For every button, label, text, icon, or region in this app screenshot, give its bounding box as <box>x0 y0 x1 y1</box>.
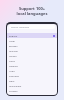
button[interactable]: Kannada <box>7 73 57 78</box>
staticText: Gujarati <box>9 64 57 67</box>
button[interactable]: Odia <box>7 78 57 83</box>
staticText: Bengali <box>9 44 57 47</box>
staticText: Tamil <box>9 59 57 62</box>
staticText: Hindi <box>9 39 57 42</box>
staticText: Search language <box>11 26 29 29</box>
button[interactable]: Search language <box>9 25 55 29</box>
staticText: Telugu <box>9 54 57 57</box>
button[interactable]: Punjabi <box>7 88 57 93</box>
button[interactable]: Urdu <box>7 68 57 73</box>
button[interactable]: Bengali <box>7 43 57 48</box>
button[interactable]: English <box>7 33 57 38</box>
staticText: Malayalam <box>9 84 57 87</box>
button[interactable]: Gujarati <box>7 63 57 68</box>
button[interactable]: Telugu <box>7 53 57 58</box>
staticText: Support 100+ local languages <box>0 6 64 17</box>
button[interactable]: Marathi <box>7 48 57 53</box>
button[interactable]: Hindi <box>7 38 57 43</box>
button[interactable]: Malayalam <box>7 83 57 88</box>
staticText: Marathi <box>9 49 57 52</box>
staticText: English <box>9 34 53 37</box>
staticText: Odia <box>9 79 57 82</box>
staticText: Punjabi <box>9 89 57 92</box>
staticText: Urdu <box>9 69 57 72</box>
button[interactable]: Tamil <box>7 58 57 63</box>
staticText: Assamese <box>9 93 57 95</box>
staticText: Kannada <box>9 74 57 77</box>
button[interactable]: Assamese <box>7 93 57 95</box>
